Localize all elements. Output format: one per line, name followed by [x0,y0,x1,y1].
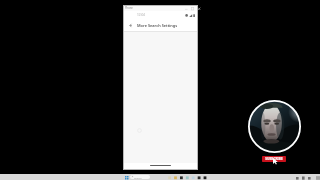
button[interactable]: SUBSCRIBE [262,156,286,162]
button[interactable]: Search [130,175,150,179]
staticText: More Search Settings [137,23,178,28]
staticText: Phone [125,6,133,10]
staticText: SUBSCRIBE [265,157,283,161]
button[interactable]: Back [124,20,137,31]
staticText: Search [134,176,142,179]
staticText: 12:04 [137,13,146,17]
